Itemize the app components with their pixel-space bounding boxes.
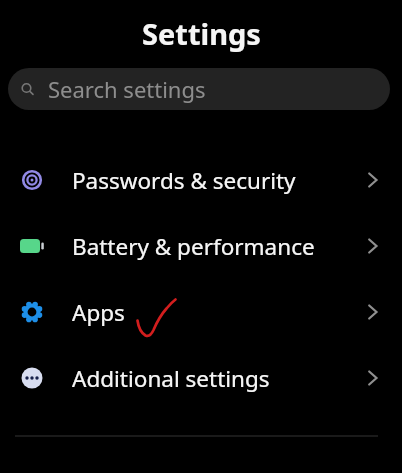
- button[interactable]: Passwords & security: [0, 147, 402, 213]
- staticText: Search settings: [48, 74, 206, 104]
- button[interactable]: Battery & performance: [0, 213, 402, 279]
- staticText: Additional settings: [72, 363, 270, 394]
- staticText: Battery & performance: [72, 231, 315, 262]
- staticText: Settings: [142, 14, 261, 53]
- button[interactable]: Search settings: [8, 68, 390, 110]
- button[interactable]: Apps: [0, 279, 402, 345]
- button[interactable]: Additional settings: [0, 345, 402, 411]
- staticText: Passwords & security: [72, 165, 296, 196]
- staticText: Apps: [72, 297, 125, 328]
